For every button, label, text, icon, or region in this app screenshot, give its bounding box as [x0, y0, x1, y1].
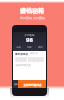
staticText: 每天领取 天天赚钱 [20, 16, 45, 20]
staticText: 余额 [16, 46, 21, 49]
staticText: 98 [26, 36, 33, 44]
staticText: 提现 [38, 46, 43, 49]
staticText: 明细 [27, 46, 32, 49]
staticText: 赚钱秘籍 [20, 7, 44, 15]
staticText: 立即签到领现金 [23, 83, 42, 86]
button[interactable]: 立即签到领现金 [18, 80, 46, 88]
staticText: 签到领现金 [15, 52, 28, 55]
staticText: 连续签到得大奖 [15, 64, 31, 67]
staticText: 今日收益 [24, 33, 35, 36]
staticText: 客服 [14, 83, 18, 85]
staticText: 连续7天 [30, 52, 38, 55]
button[interactable]: 客服 [13, 80, 18, 88]
